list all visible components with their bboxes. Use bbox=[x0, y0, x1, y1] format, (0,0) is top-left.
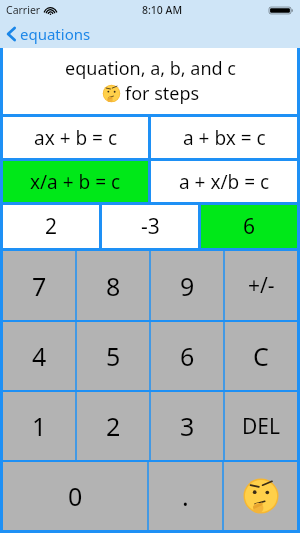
staticText: . bbox=[182, 479, 189, 513]
staticText: x/a + b = c bbox=[30, 169, 121, 195]
staticText: Carrier bbox=[6, 3, 41, 17]
button[interactable]: a + bx = c bbox=[151, 117, 297, 158]
staticText: 2 bbox=[106, 409, 121, 443]
staticText: -3 bbox=[141, 212, 160, 241]
button[interactable]: 6 bbox=[151, 322, 223, 390]
button[interactable]: 2 bbox=[77, 392, 149, 460]
staticText: equation, a, b, and c bbox=[65, 56, 236, 81]
staticText: for steps bbox=[125, 81, 200, 106]
staticText: a + bx = c bbox=[183, 125, 266, 151]
staticText: DEL bbox=[242, 412, 281, 441]
staticText: 8 bbox=[106, 269, 121, 303]
staticText: 3 bbox=[180, 409, 195, 443]
button[interactable]: 9 bbox=[151, 251, 223, 320]
button[interactable]: +/- bbox=[225, 251, 297, 320]
button[interactable]: 8 bbox=[77, 251, 149, 320]
button[interactable]: 2 bbox=[3, 205, 99, 248]
staticText: 1 bbox=[32, 409, 47, 443]
button[interactable]: a + x/b = c bbox=[151, 161, 297, 202]
staticText: 6 bbox=[243, 212, 256, 241]
staticText: a + x/b = c bbox=[179, 169, 270, 195]
staticText: ax + b = c bbox=[34, 125, 118, 151]
staticText: 9 bbox=[180, 269, 195, 303]
button[interactable]: equations bbox=[0, 20, 300, 48]
staticText: 6 bbox=[180, 339, 195, 373]
staticText: 5 bbox=[106, 339, 121, 373]
button[interactable]: -3 bbox=[102, 205, 198, 248]
button[interactable]: ax + b = c bbox=[3, 117, 148, 158]
staticText: 8:10 AM bbox=[142, 3, 183, 17]
button[interactable]: . bbox=[149, 462, 222, 530]
button[interactable]: 4 bbox=[3, 322, 75, 390]
button[interactable]: 0 bbox=[3, 462, 147, 530]
button[interactable]: x/a + b = c bbox=[3, 161, 148, 202]
button[interactable]: 5 bbox=[77, 322, 149, 390]
button[interactable]: DEL bbox=[225, 392, 297, 460]
button[interactable]: 1 bbox=[3, 392, 75, 460]
staticText: 4 bbox=[32, 339, 47, 373]
button[interactable]: 3 bbox=[151, 392, 223, 460]
staticText: 0 bbox=[68, 479, 83, 513]
button[interactable]: 6 bbox=[201, 205, 297, 248]
staticText: 2 bbox=[45, 212, 58, 241]
staticText: equations bbox=[20, 24, 91, 44]
button[interactable]: equation, a, b, and c bbox=[3, 48, 297, 114]
button[interactable]: 7 bbox=[3, 251, 75, 320]
staticText: 7 bbox=[32, 269, 47, 303]
button[interactable]: C bbox=[225, 322, 297, 390]
staticText: +/- bbox=[248, 271, 275, 300]
staticText: C bbox=[253, 339, 269, 373]
button[interactable]: Show steps bbox=[224, 462, 297, 530]
